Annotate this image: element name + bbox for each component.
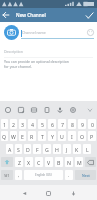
button[interactable]: 8 [68,119,76,129]
staticText: P [90,133,94,140]
button[interactable]: S [15,144,22,154]
button[interactable]: Hide keyboard [66,186,80,200]
button[interactable]: I [68,131,76,141]
staticText: W [11,133,16,140]
button[interactable]: Y [48,131,56,141]
button[interactable]: Stickers [14,101,27,118]
button[interactable]: W [10,131,17,141]
button[interactable]: 6 [48,119,56,129]
staticText: J [66,146,68,153]
button[interactable]: T [38,131,46,141]
staticText: R [30,133,34,140]
staticText: , [18,172,20,178]
button[interactable]: Emoji [1,101,14,118]
button[interactable]: English (US) [24,170,63,180]
staticText: N [67,159,71,166]
button[interactable]: Settings [66,101,79,118]
button[interactable]: , [15,170,22,180]
staticText: I [71,133,73,140]
button[interactable]: Back [0,8,12,22]
staticText: Channel name [22,30,46,35]
staticText: 9 [81,121,84,128]
button[interactable]: J [63,144,71,154]
button[interactable]: M [75,157,83,167]
staticText: D [26,146,30,153]
button[interactable]: Z [15,157,23,167]
staticText: English (US) [35,173,52,177]
staticText: L [86,146,89,153]
button[interactable]: Clipboard [40,101,53,118]
button[interactable]: D [24,144,31,154]
staticText: G [45,146,49,153]
staticText: New Channel [16,12,46,18]
button[interactable]: A [6,144,13,154]
button[interactable]: Q [1,131,8,141]
staticText: M [77,159,82,166]
staticText: 2 [12,121,15,128]
button[interactable]: 1 [1,119,8,129]
staticText: A [8,146,12,153]
button[interactable]: Emoji [86,28,94,36]
button[interactable]: P [88,131,96,141]
button[interactable]: X [25,157,33,167]
button[interactable]: 4 [28,119,36,129]
staticText: 6 [51,121,54,128]
button[interactable]: Set channel photo [4,25,19,40]
button[interactable]: Backspace [85,157,96,167]
staticText: . [68,172,70,178]
button[interactable]: C [35,157,43,167]
button[interactable]: GIF [27,101,40,118]
staticText: 5 [41,121,44,128]
button[interactable]: 7 [58,119,66,129]
button[interactable]: 5 [38,119,46,129]
staticText: 7 [61,121,64,128]
button[interactable]: B [55,157,63,167]
staticText: H [55,146,59,153]
staticText: 1 [3,121,6,128]
staticText: E [21,133,24,140]
button[interactable]: 0 [88,119,96,129]
button[interactable]: . [65,170,73,180]
button[interactable]: U [58,131,66,141]
button[interactable]: Shift [1,157,13,167]
button[interactable]: 9 [78,119,86,129]
staticText: C [37,159,41,166]
staticText: K [75,146,79,153]
staticText: You can provide an optional description … [4,59,69,69]
staticText: 3 [21,121,24,128]
button[interactable]: 3 [19,119,26,129]
button[interactable]: Back [17,186,31,200]
button[interactable]: !#1 [1,170,13,180]
staticText: T [41,133,44,140]
button[interactable]: O [78,131,86,141]
staticText: X [27,159,31,166]
button[interactable]: E [19,131,26,141]
staticText: O [80,133,85,140]
staticText: Y [51,133,54,140]
button[interactable]: V [45,157,53,167]
button[interactable]: G [43,144,51,154]
button[interactable]: L [83,144,91,154]
staticText: U [60,133,64,140]
button[interactable]: R [28,131,36,141]
staticText: F [36,146,39,153]
staticText: Description [4,49,23,54]
button[interactable]: K [73,144,81,154]
staticText: V [47,159,51,166]
staticText: !#1 [4,173,10,178]
staticText: Q [2,133,7,140]
button[interactable]: 2 [10,119,17,129]
staticText: 4 [31,121,34,128]
button[interactable]: Home [41,186,55,200]
staticText: 8 [71,121,74,128]
button[interactable]: Voice input [53,101,66,118]
staticText: Z [18,159,21,166]
button[interactable]: F [33,144,41,154]
staticText: 0 [91,121,94,128]
button[interactable]: More options [83,101,97,118]
button[interactable]: N [65,157,73,167]
button[interactable]: Next [75,170,96,180]
button[interactable]: H [53,144,61,154]
staticText: Next [82,173,90,178]
button[interactable]: Save [81,8,97,22]
